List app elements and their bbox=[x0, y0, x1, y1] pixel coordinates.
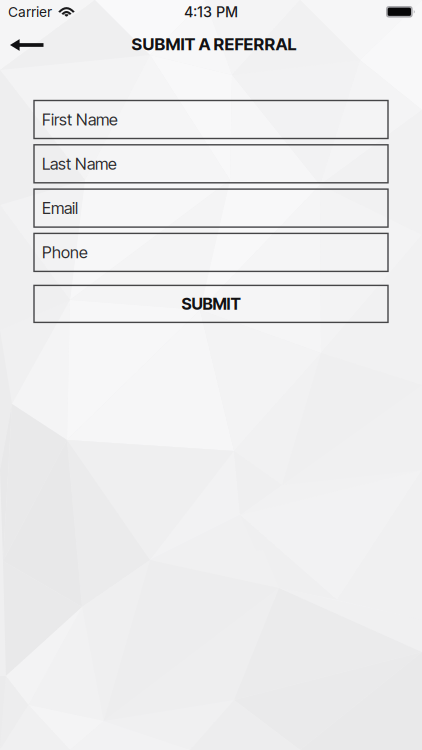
staticText: Carrier bbox=[8, 4, 52, 20]
button[interactable]: First Name bbox=[34, 100, 388, 138]
staticText: Last Name bbox=[42, 154, 117, 174]
staticText: First Name bbox=[42, 110, 118, 129]
staticText: SUBMIT bbox=[181, 294, 240, 314]
staticText: 4:13 PM bbox=[184, 3, 238, 21]
staticText: SUBMIT A REFERRAL bbox=[131, 34, 296, 54]
staticText: Email bbox=[42, 198, 78, 218]
button[interactable]: Last Name bbox=[34, 145, 388, 183]
button[interactable]: Back bbox=[0, 27, 72, 63]
button[interactable]: Email bbox=[34, 189, 388, 227]
staticText: Phone bbox=[42, 243, 88, 262]
button[interactable]: SUBMIT bbox=[34, 285, 388, 322]
button[interactable]: Phone bbox=[34, 233, 388, 271]
